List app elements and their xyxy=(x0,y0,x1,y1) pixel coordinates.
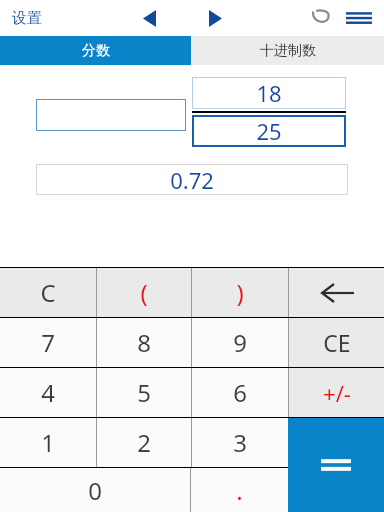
button[interactable]: 6 xyxy=(192,368,288,417)
button[interactable]: 设置 xyxy=(8,5,46,32)
staticText: 3 xyxy=(233,426,247,459)
staticText: CE xyxy=(323,327,351,358)
button[interactable]: . xyxy=(191,468,288,512)
button[interactable]: 1 xyxy=(0,418,96,467)
button[interactable]: 5 xyxy=(97,368,191,417)
button[interactable]: 8 xyxy=(97,318,191,367)
staticText: 7 xyxy=(41,326,55,359)
button[interactable]: 4 xyxy=(0,368,96,417)
button[interactable]: ( xyxy=(97,268,191,317)
staticText: 9 xyxy=(233,326,247,359)
button[interactable]: Whole number field xyxy=(36,99,186,131)
button[interactable]: Menu xyxy=(340,0,378,36)
button[interactable]: Equals xyxy=(288,418,384,512)
button[interactable]: Backspace xyxy=(289,268,384,317)
staticText: 0.72 xyxy=(170,165,214,195)
button[interactable]: +/- xyxy=(289,368,384,417)
button[interactable]: CE xyxy=(289,318,384,367)
button[interactable]: 25 xyxy=(192,115,346,147)
button[interactable]: 3 xyxy=(192,418,288,467)
button[interactable]: 18 xyxy=(192,77,346,109)
staticText: . xyxy=(236,474,243,507)
button[interactable]: Next xyxy=(198,1,232,35)
staticText: ) xyxy=(236,276,244,309)
staticText: 0 xyxy=(88,474,102,507)
button[interactable]: 分数 xyxy=(0,36,191,65)
staticText: 18 xyxy=(256,78,282,108)
button[interactable]: 2 xyxy=(97,418,191,467)
staticText: 4 xyxy=(41,376,55,409)
staticText: +/- xyxy=(323,378,351,408)
staticText: 6 xyxy=(233,376,247,409)
staticText: 十进制数 xyxy=(260,42,316,60)
button[interactable]: 0.72 xyxy=(36,164,348,195)
button[interactable]: 9 xyxy=(192,318,288,367)
button[interactable]: 7 xyxy=(0,318,96,367)
button[interactable]: ) xyxy=(192,268,288,317)
button[interactable]: Previous xyxy=(132,1,166,35)
button[interactable]: 0 xyxy=(0,468,190,512)
button[interactable]: 十进制数 xyxy=(191,36,384,65)
button[interactable]: Undo xyxy=(304,1,338,35)
staticText: 分数 xyxy=(82,42,110,60)
button[interactable]: C xyxy=(0,268,96,317)
staticText: 5 xyxy=(137,376,151,409)
staticText: 8 xyxy=(137,326,151,359)
staticText: 2 xyxy=(137,426,151,459)
staticText: ( xyxy=(140,276,148,309)
staticText: 25 xyxy=(256,116,282,146)
staticText: C xyxy=(40,276,56,309)
staticText: 设置 xyxy=(12,9,42,28)
staticText: 1 xyxy=(41,426,55,459)
